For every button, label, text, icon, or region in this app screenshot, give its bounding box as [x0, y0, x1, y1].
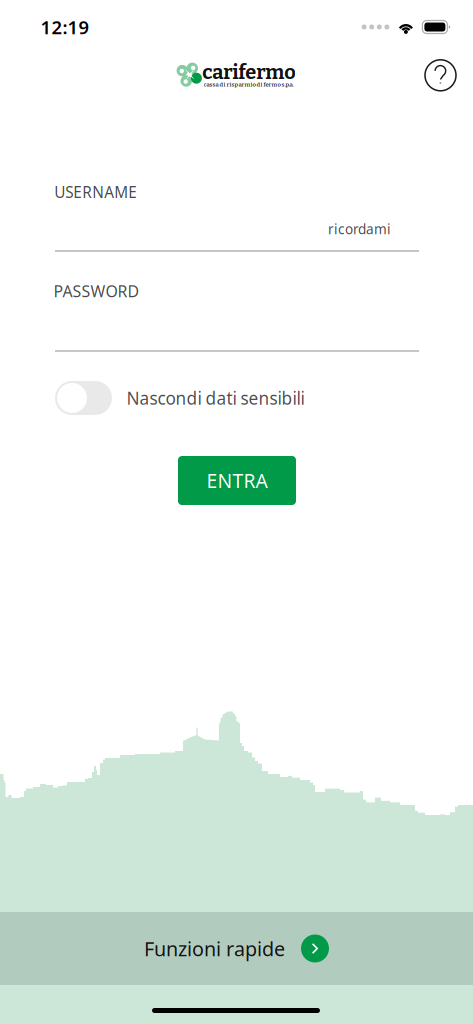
- staticText: ricordami: [328, 220, 391, 238]
- staticText: PASSWORD: [53, 280, 139, 302]
- button[interactable]: ENTRA: [178, 456, 296, 505]
- staticText: carifermo: [202, 60, 296, 84]
- button[interactable]: Funzioni rapide: [0, 912, 473, 985]
- staticText: Nascondi dati sensibili: [126, 386, 304, 410]
- staticText: cassa di risparmio di fermo s.p.a.: [203, 81, 293, 88]
- button[interactable]: Nascondi dati sensibili: [55, 381, 112, 415]
- staticText: 12:19: [40, 14, 89, 40]
- staticText: ENTRA: [206, 467, 267, 494]
- button[interactable]: Aiuto: [418, 53, 462, 97]
- staticText: Funzioni rapide: [144, 935, 285, 962]
- staticText: USERNAME: [54, 182, 137, 202]
- button[interactable]: ricordami: [131, 214, 391, 244]
